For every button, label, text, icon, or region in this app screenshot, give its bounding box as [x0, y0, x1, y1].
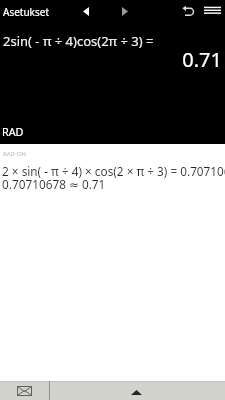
staticText: 0.71 — [0, 46, 222, 73]
staticText: 0.70710678 ≈ 0.71 — [2, 176, 106, 192]
button[interactable]: Undo — [178, 1, 198, 21]
button[interactable]: Menu — [200, 0, 224, 20]
staticText: RAD — [2, 124, 24, 139]
button[interactable]: Next — [115, 1, 135, 21]
button[interactable]: Expand — [50, 381, 225, 400]
staticText: 2sin( - π ÷ 4)cos(2π ÷ 3) = — [3, 32, 154, 50]
button[interactable]: Asetukset — [0, 2, 60, 22]
staticText: 2 × sin( - π ÷ 4) × cos(2 × π ÷ 3) = 0.7… — [2, 163, 225, 179]
staticText: RAD ON — [3, 150, 26, 158]
button[interactable]: Mail — [0, 381, 49, 400]
staticText: Asetukset — [3, 5, 49, 19]
button[interactable]: Previous — [76, 1, 96, 21]
